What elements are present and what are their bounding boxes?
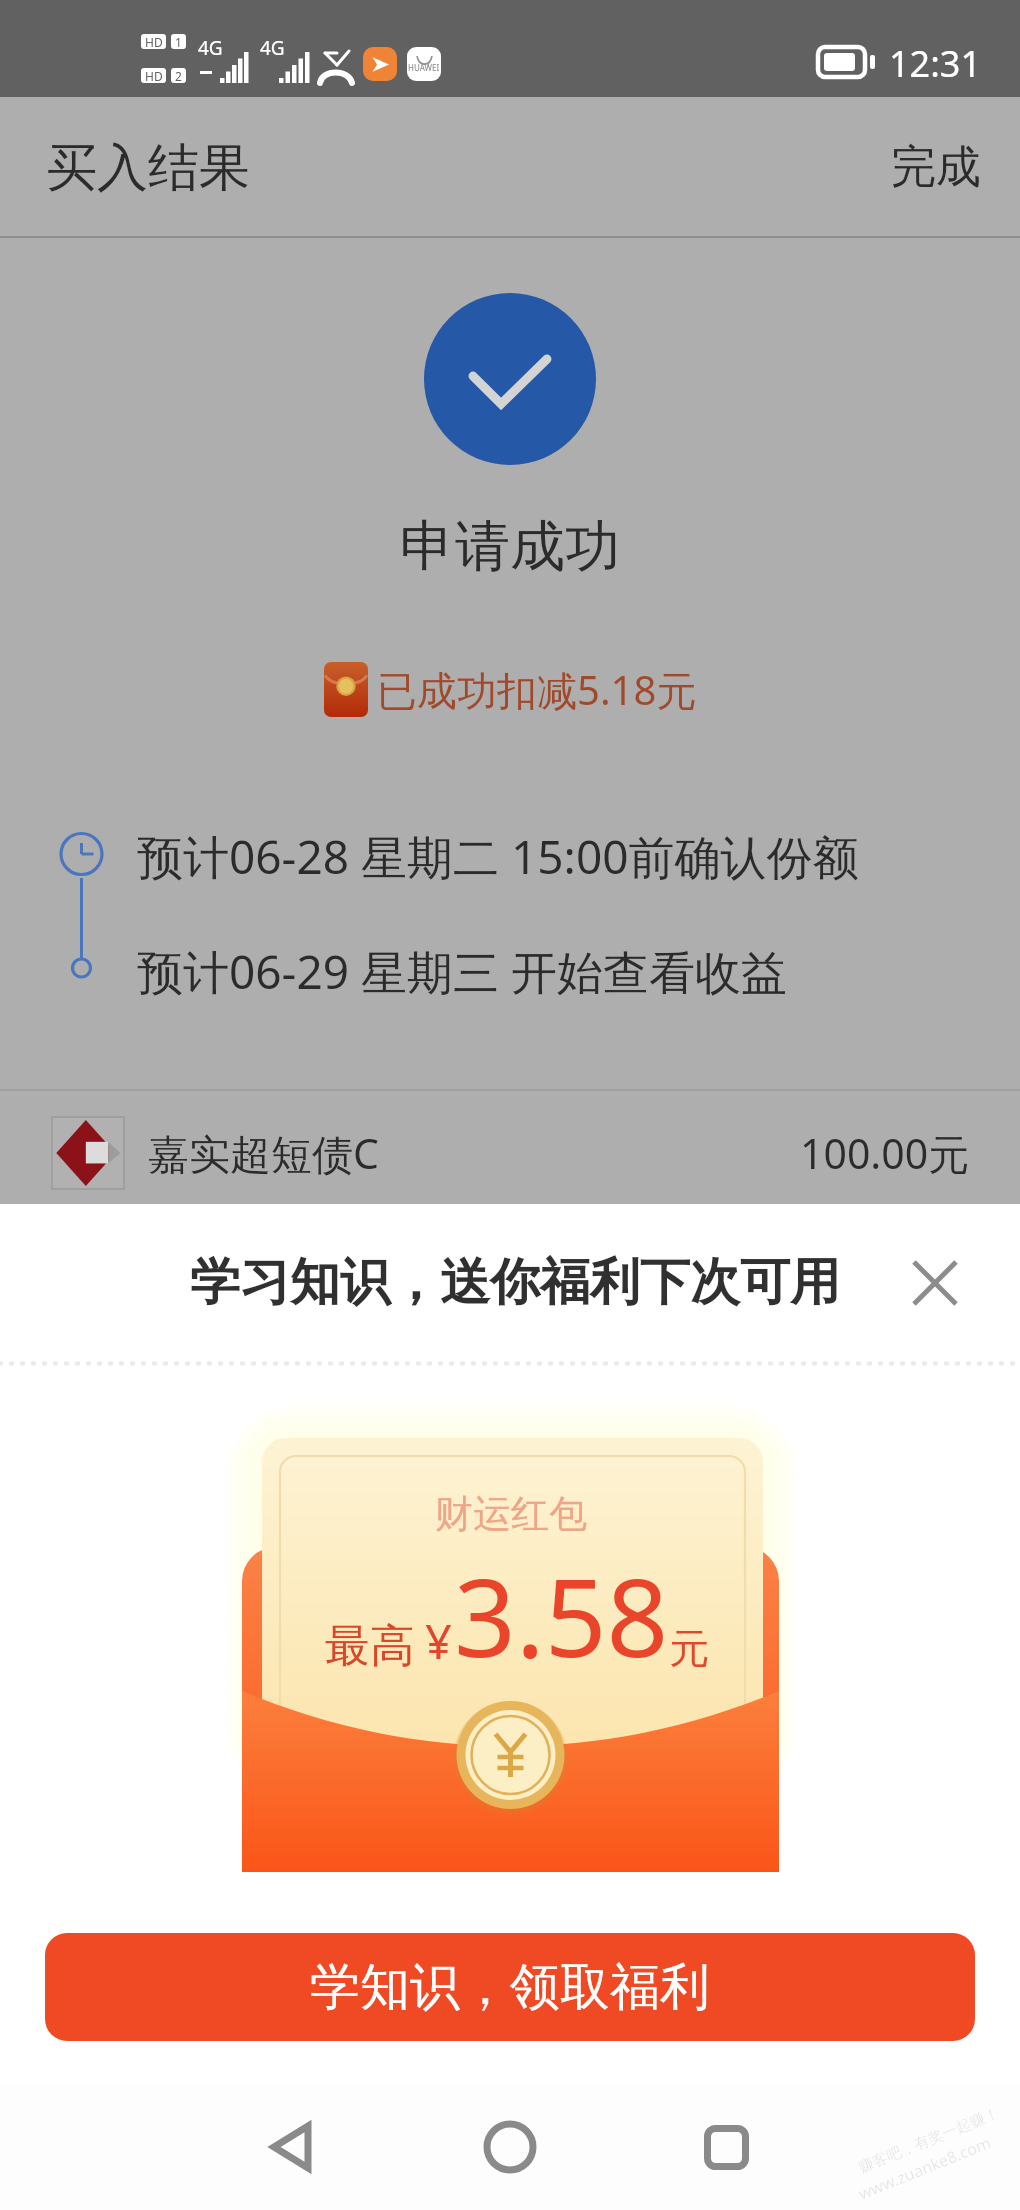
staticText: 预计06-29 星期三 开始查看收益 [137, 940, 787, 1003]
button[interactable]: Home [450, 2092, 570, 2202]
staticText: HD [145, 34, 163, 49]
button[interactable]: 学知识，领取福利 [45, 1933, 975, 2041]
staticText: 2 [175, 68, 182, 83]
staticText: 元 [669, 1623, 709, 1673]
staticText: 学习知识，送你福利下次可用 [190, 1251, 840, 1314]
staticText: 4G [260, 35, 285, 61]
staticText: HD [145, 68, 163, 83]
staticText: 嘉实超短债C [148, 1125, 379, 1181]
staticText: 最高 [325, 1618, 415, 1675]
button[interactable]: 完成 [849, 117, 1020, 218]
button[interactable]: Recents [666, 2092, 786, 2202]
staticText: 申请成功 [400, 512, 620, 581]
staticText: www.zuanke8.com [855, 2131, 994, 2205]
staticText: 学知识，领取福利 [310, 1956, 710, 2019]
staticText: 赚客吧，有奖一起赚！ [856, 2104, 1002, 2177]
staticText: 4G [198, 35, 223, 61]
staticText: 1 [175, 34, 182, 49]
staticText: ¥ [425, 1609, 452, 1673]
staticText: 完成 [891, 139, 981, 196]
staticText: 买入结果 [46, 136, 250, 200]
button[interactable]: 嘉实超短债C [52, 1117, 970, 1189]
staticText: 已成功扣减5.18元 [377, 662, 697, 717]
staticText: 12:31 [889, 39, 982, 88]
staticText: 财运红包 [435, 1490, 587, 1538]
staticText: 3.58 [454, 1542, 669, 1689]
staticText: HUAWEI [408, 62, 440, 73]
staticText: 预计06-28 星期二 15:00前确认份额 [137, 825, 859, 888]
button[interactable]: Close [897, 1245, 973, 1321]
staticText: 100.00元 [800, 1125, 970, 1181]
button[interactable]: Back [231, 2092, 351, 2202]
